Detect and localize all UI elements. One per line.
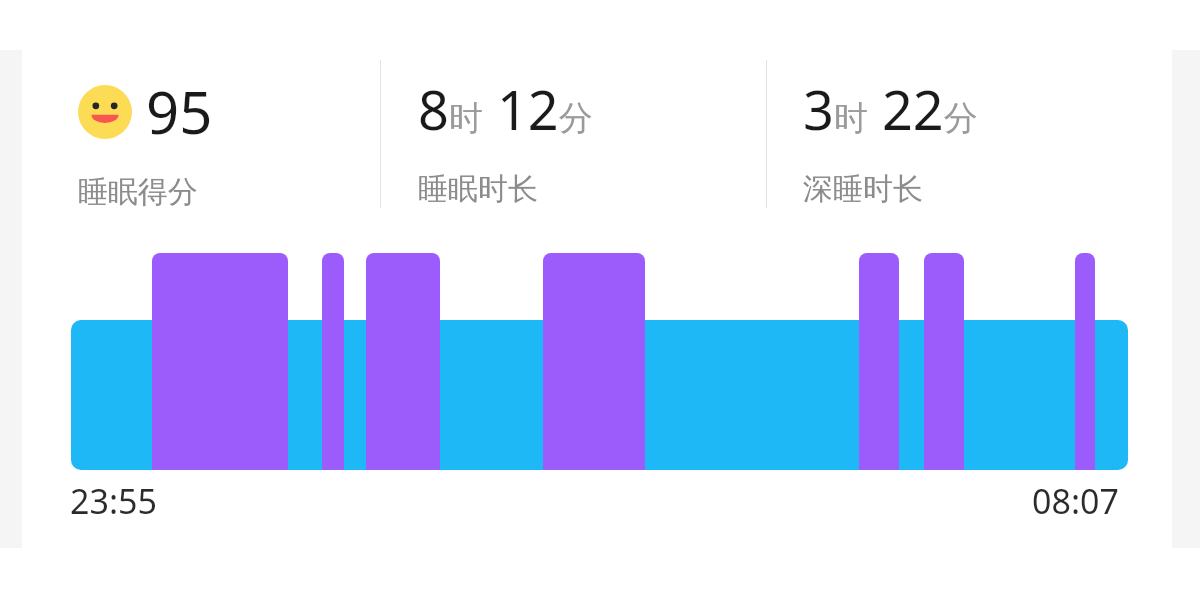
other: Good sleep quality [78, 85, 132, 139]
button[interactable]: 3时 22分 [803, 72, 978, 208]
button[interactable]: Good sleep quality [78, 72, 213, 211]
staticText: 3时 22分 [803, 72, 978, 146]
staticText: 深睡时长 [803, 170, 923, 208]
staticText: 95 [146, 72, 213, 151]
button[interactable]: 8时 12分 [418, 72, 593, 208]
staticText: 23:55 [70, 478, 157, 524]
staticText: 8时 12分 [418, 72, 593, 146]
button[interactable]: Sleep stage chart [0, 0, 1200, 600]
staticText: 睡眠得分 [78, 173, 198, 211]
staticText: 08:07 [1032, 478, 1119, 524]
staticText: 睡眠时长 [418, 170, 538, 208]
